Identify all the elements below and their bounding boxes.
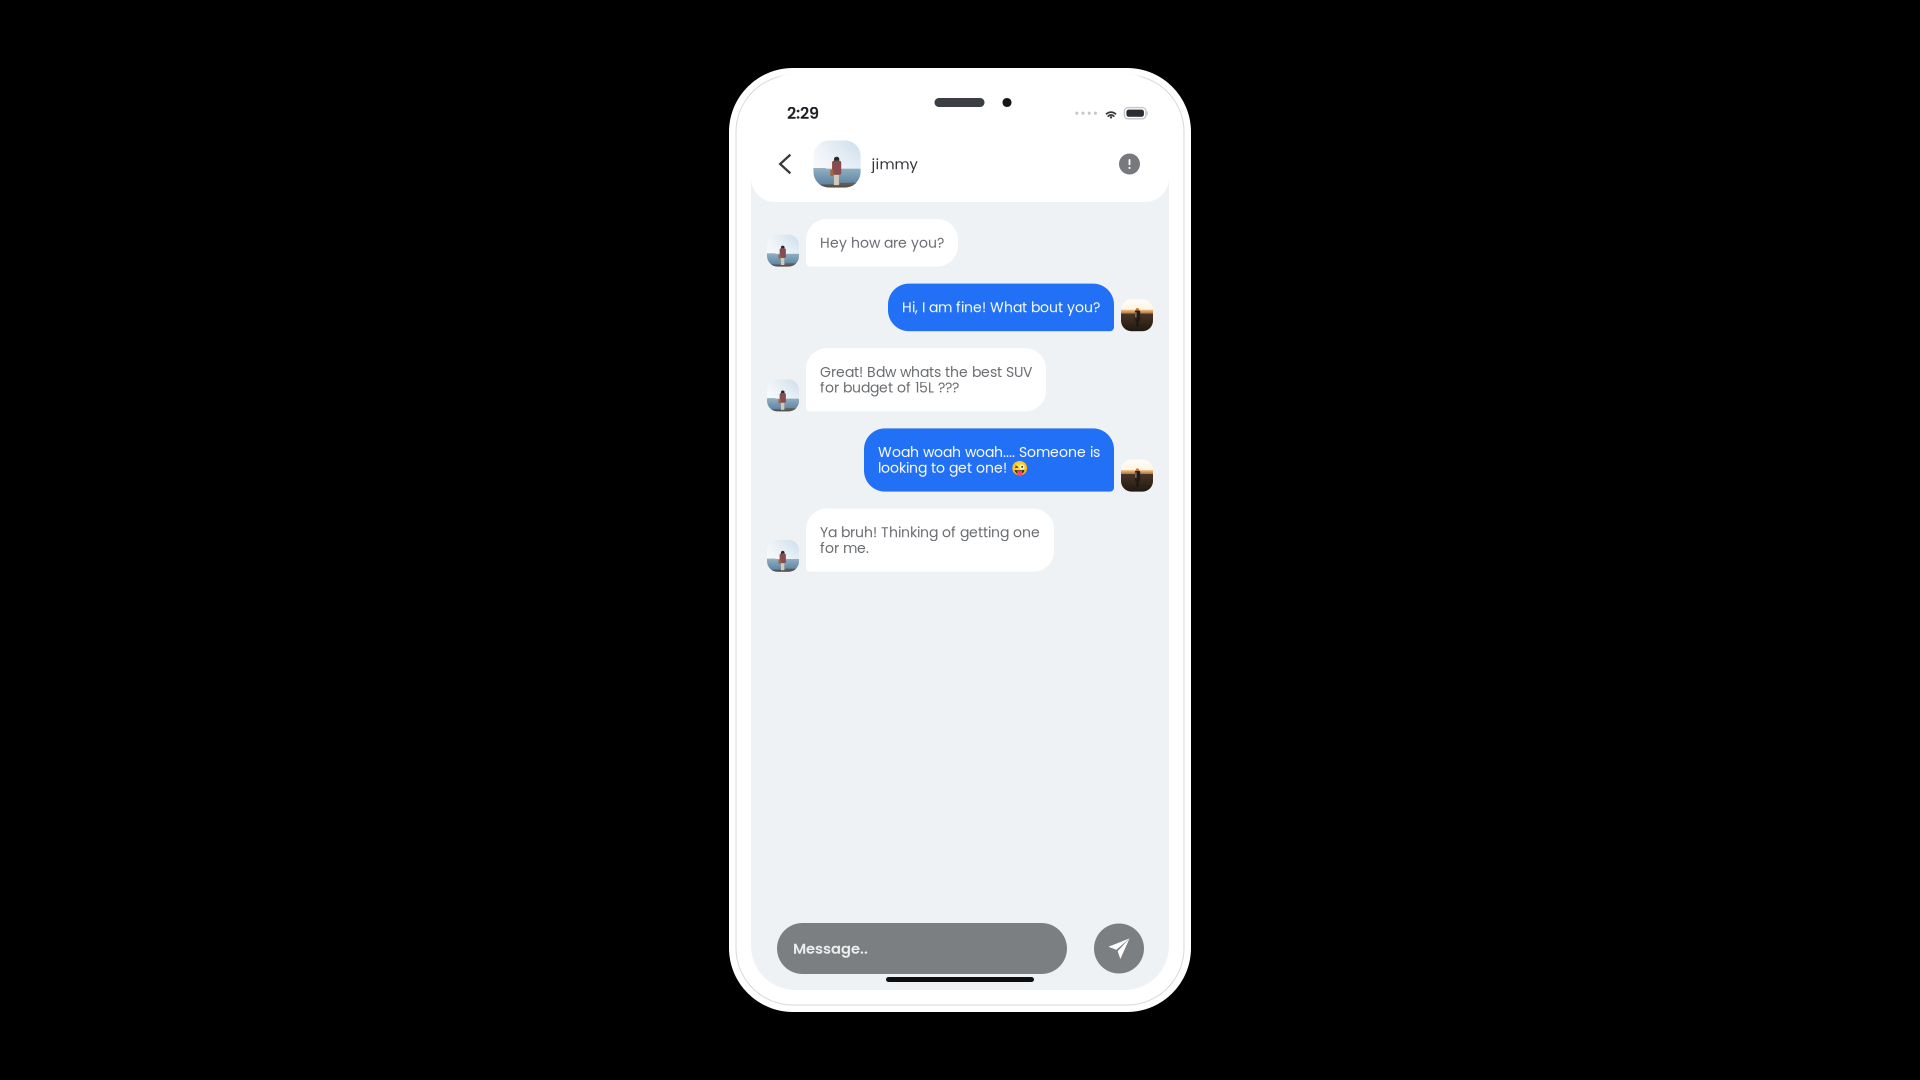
button[interactable]: Message..	[777, 923, 1067, 974]
staticText: Great! Bdw whats the best SUV for budget…	[820, 362, 1032, 397]
staticText: Hi, I am fine! What bout you?	[902, 298, 1100, 317]
staticText: Message..	[793, 938, 868, 959]
staticText: jimmy	[871, 154, 917, 174]
staticText: 2:29	[787, 102, 819, 124]
staticText: Woah woah woah.... Someone is looking to…	[878, 442, 1100, 478]
button[interactable]: Back	[770, 143, 800, 184]
staticText: Hey how are you?	[820, 233, 944, 253]
staticText: Ya bruh! Thinking of getting one for me.	[820, 523, 1040, 558]
button[interactable]: Details	[1111, 145, 1148, 182]
button[interactable]: Send	[1094, 923, 1144, 973]
button[interactable]: jimmy	[813, 140, 917, 187]
